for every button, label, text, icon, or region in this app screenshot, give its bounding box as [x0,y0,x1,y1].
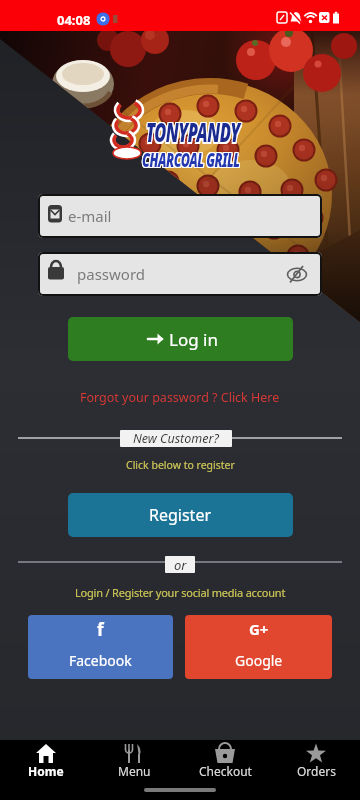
staticText: CHARCOAL GRILL [142,148,239,173]
staticText: Google [235,651,283,670]
button[interactable]: f [28,615,173,679]
staticText: CHARCOAL GRILL [143,147,240,172]
staticText: CHARCOAL GRILL [143,146,240,171]
button[interactable]: e-mail [38,194,322,238]
staticText: CHARCOAL GRILL [143,148,240,173]
staticText: Facebook [69,651,132,670]
button[interactable]: Menu [90,741,178,785]
staticText: Register [149,504,212,526]
staticText: Click below to register [126,458,235,472]
button[interactable]: Orders [272,741,360,785]
staticText: TONYPANDY [147,114,241,149]
staticText: New Customer? [133,430,219,447]
button[interactable]: G+ [185,615,332,679]
button[interactable]: Home [2,741,90,785]
staticText: Log in [169,328,218,351]
button[interactable]: Checkout [178,741,272,785]
staticText: TONYPANDY [147,115,241,150]
staticText: 04:08 [57,11,91,29]
staticText: TONYPANDY [146,115,240,150]
button[interactable]: Register [68,493,293,537]
button[interactable]: password [38,252,322,296]
staticText: or [174,556,187,573]
button[interactable]: Forgot your password ? Click Here [0,389,360,406]
button[interactable]: Log in [68,317,293,361]
staticText: Home [28,763,64,779]
staticText: Forgot your password ? Click Here [80,389,280,406]
staticText: Login / Register your social media accou… [75,585,286,600]
staticText: CHARCOAL GRILL [141,146,239,171]
staticText: CHARCOAL GRILL [142,146,239,171]
staticText: CHARCOAL GRILL [141,147,239,172]
staticText: Orders [297,763,336,779]
staticText: password [77,264,145,284]
staticText: G+ [249,619,269,639]
staticText: f [97,618,104,641]
staticText: TONYPANDY [146,116,240,151]
staticText: e-mail [68,206,112,226]
staticText: TONYPANDY [145,115,239,150]
staticText: CHARCOAL GRILL [142,147,239,172]
staticText: CHARCOAL GRILL [141,148,239,173]
staticText: TONYPANDY [147,116,241,151]
staticText: TONYPANDY [145,116,239,151]
staticText: Checkout [199,763,252,779]
staticText: TONYPANDY [146,114,240,149]
staticText: TONYPANDY [145,114,239,149]
staticText: Menu [118,763,151,779]
